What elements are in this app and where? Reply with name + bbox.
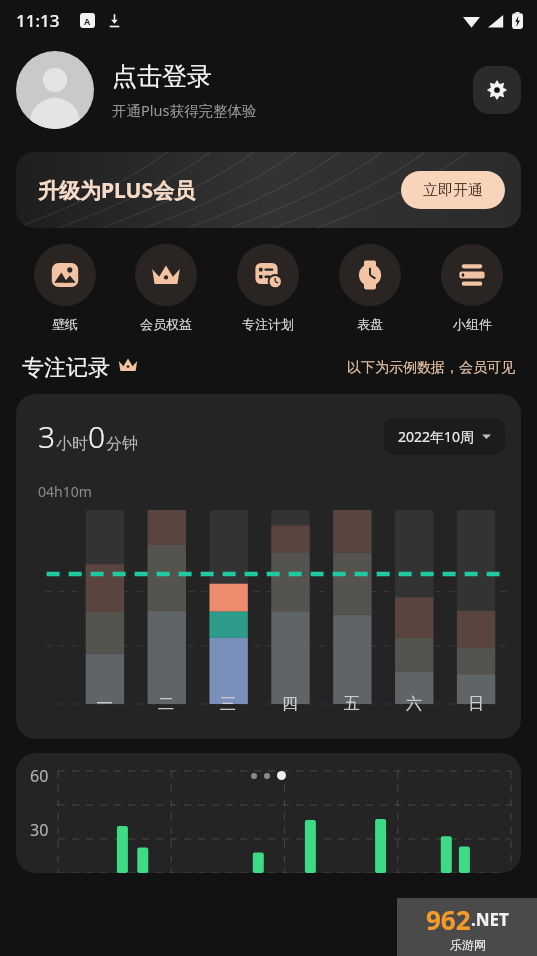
staticText: 壁纸 — [52, 316, 78, 332]
button[interactable]: Settings — [473, 66, 521, 114]
staticText: 四 — [259, 694, 321, 714]
staticText: 表盘 — [357, 316, 383, 332]
staticText: 小时 — [56, 434, 88, 454]
staticText: 专注记录 — [22, 354, 110, 382]
staticText: 立即开通 — [423, 181, 483, 200]
button[interactable]: 表盘 — [319, 244, 421, 332]
staticText: 日 — [445, 694, 507, 714]
staticText: 升级为PLUS会员 — [38, 176, 196, 205]
staticText: A — [84, 15, 91, 27]
staticText: 五 — [321, 694, 383, 714]
staticText: 六 — [383, 694, 445, 714]
staticText: 一 — [74, 694, 135, 714]
staticText: 三 — [197, 694, 259, 714]
button[interactable]: 升级为PLUS会员 — [16, 152, 521, 228]
button[interactable]: 3 — [16, 394, 521, 739]
staticText: 乐游网 — [450, 937, 486, 952]
button[interactable]: 会员权益 — [115, 244, 217, 332]
staticText: 小组件 — [453, 316, 492, 332]
staticText: 0 — [88, 416, 106, 457]
staticText: 60 — [30, 765, 49, 787]
staticText: 30 — [30, 819, 49, 841]
staticText: 分钟 — [106, 434, 138, 454]
button[interactable]: 立即开通 — [401, 171, 505, 209]
button[interactable] — [16, 51, 94, 129]
staticText: 开通Plus获得完整体验 — [112, 100, 257, 120]
staticText: .NET — [471, 908, 509, 931]
staticText: 04h10m — [38, 482, 92, 501]
button[interactable]: 专注计划 — [217, 244, 319, 332]
staticText: 以下为示例数据，会员可见 — [347, 359, 515, 377]
staticText: 会员权益 — [140, 316, 192, 332]
button[interactable]: 壁纸 — [14, 244, 115, 332]
staticText: 二 — [135, 694, 197, 714]
staticText: 962 — [426, 902, 471, 937]
button[interactable]: 60 — [16, 753, 521, 873]
button[interactable]: 点击登录 — [112, 61, 473, 120]
staticText: 2022年10周 — [398, 427, 475, 446]
button[interactable]: 2022年10周 — [384, 418, 505, 455]
button[interactable]: 小组件 — [421, 244, 523, 332]
staticText: 3 — [38, 416, 56, 457]
staticText: 点击登录 — [112, 61, 212, 92]
staticText: 11:13 — [16, 9, 60, 32]
staticText: 专注计划 — [242, 316, 294, 332]
